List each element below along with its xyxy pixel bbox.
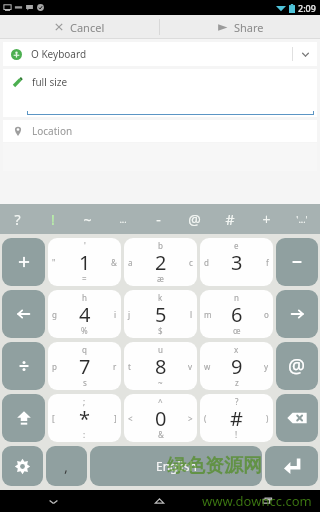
staticText: s xyxy=(83,377,87,388)
staticText: œ xyxy=(233,325,241,336)
staticText: - xyxy=(156,210,161,229)
staticText: 1 xyxy=(79,249,91,276)
button[interactable]: Share xyxy=(160,15,320,39)
staticText: * xyxy=(79,405,91,432)
button[interactable]: Hide keyboard xyxy=(0,490,106,512)
staticText: j xyxy=(128,309,131,320)
staticText: p xyxy=(52,361,57,372)
button[interactable]: # xyxy=(212,204,248,234)
button[interactable]: Enter xyxy=(265,446,318,486)
staticText: v xyxy=(188,361,193,372)
button[interactable]: 7 xyxy=(48,342,121,390)
button[interactable]: 9 xyxy=(200,342,273,390)
button[interactable]: At sign xyxy=(276,342,318,390)
staticText: O Keyboard xyxy=(31,47,87,61)
staticText: b xyxy=(158,240,163,251)
staticText: z xyxy=(235,377,239,388)
staticText: 0 xyxy=(155,405,167,432)
staticText: '...' xyxy=(296,213,308,225)
button[interactable]: Recents xyxy=(213,490,320,512)
staticText: ? xyxy=(235,396,239,407)
button[interactable]: Home xyxy=(106,490,213,512)
staticText: 绿色资源网 xyxy=(167,454,262,478)
button[interactable]: ? xyxy=(0,204,35,234)
button[interactable]: ! xyxy=(35,204,70,234)
staticText: i xyxy=(114,309,117,320)
button[interactable]: Right xyxy=(276,290,318,338)
button[interactable]: Cancel xyxy=(0,15,159,39)
staticText: y xyxy=(264,361,269,372)
button[interactable]: , xyxy=(46,446,87,486)
button[interactable]: Plus xyxy=(2,238,45,286)
staticText: + xyxy=(262,210,271,229)
button[interactable]: Settings xyxy=(2,446,43,486)
staticText: ! xyxy=(235,429,238,440)
staticText: h xyxy=(82,292,87,303)
staticText: % xyxy=(81,325,88,336)
staticText: x xyxy=(234,344,239,355)
button[interactable]: Backspace xyxy=(276,394,318,442)
staticText: & xyxy=(158,429,164,440)
staticText: 2 xyxy=(155,249,167,276)
button[interactable]: @ xyxy=(176,204,212,234)
staticText: 5 xyxy=(155,301,167,328)
staticText: ' xyxy=(84,240,86,251)
staticText: > xyxy=(188,413,193,424)
button[interactable]: Location xyxy=(3,120,317,142)
button[interactable]: Left xyxy=(2,290,45,338)
staticText: e xyxy=(234,240,239,251)
button[interactable]: ~ xyxy=(70,204,105,234)
staticText: # xyxy=(225,210,235,229)
button[interactable]: '...' xyxy=(284,204,320,234)
staticText: English xyxy=(156,458,197,474)
staticText: 6 xyxy=(231,301,243,328)
staticText: ~ xyxy=(83,210,92,229)
staticText: q xyxy=(82,344,87,355)
staticText: ) xyxy=(266,413,269,424)
staticText: u xyxy=(158,344,163,355)
staticText: d xyxy=(204,257,209,268)
button[interactable]: - xyxy=(140,204,176,234)
button[interactable]: 4 xyxy=(48,290,121,338)
staticText: m xyxy=(204,309,212,320)
button[interactable]: 1 xyxy=(48,238,121,286)
staticText: f xyxy=(266,257,269,268)
staticText: 9 xyxy=(231,353,243,380)
button[interactable]: Minus xyxy=(276,238,318,286)
staticText: & xyxy=(111,257,117,268)
button[interactable]: Shift xyxy=(2,394,45,442)
button[interactable]: 8 xyxy=(124,342,197,390)
button[interactable]: 0 xyxy=(124,394,197,442)
button[interactable]: O Keyboard xyxy=(3,42,317,66)
staticText: t xyxy=(128,361,131,372)
staticText: æ xyxy=(157,273,164,284)
staticText: 4 xyxy=(79,301,91,328)
staticText: c xyxy=(189,257,193,268)
staticText: # xyxy=(230,405,243,432)
staticText: w xyxy=(204,361,211,372)
button[interactable]: 5 xyxy=(124,290,197,338)
staticText: 7 xyxy=(79,353,91,380)
staticText: ( xyxy=(204,413,207,424)
staticText: ... xyxy=(119,213,127,225)
staticText: @ xyxy=(188,210,201,229)
button[interactable]: 3 xyxy=(200,238,273,286)
staticText: 8 xyxy=(155,353,167,380)
button[interactable]: Divide xyxy=(2,342,45,390)
staticText: , xyxy=(64,456,69,476)
button[interactable]: ... xyxy=(105,204,140,234)
button[interactable]: + xyxy=(248,204,284,234)
staticText: ; xyxy=(83,396,86,407)
staticText: Location xyxy=(32,124,73,138)
button[interactable]: * xyxy=(48,394,121,442)
staticText: ! xyxy=(51,210,55,229)
staticText: r xyxy=(113,361,117,372)
button[interactable]: English xyxy=(90,446,262,486)
staticText: g xyxy=(52,309,57,320)
staticText: www.downcc.com xyxy=(202,492,312,510)
staticText: full size xyxy=(32,75,68,89)
button[interactable]: 2 xyxy=(124,238,197,286)
staticText: 3 xyxy=(231,249,243,276)
button[interactable]: # xyxy=(200,394,273,442)
button[interactable]: 6 xyxy=(200,290,273,338)
